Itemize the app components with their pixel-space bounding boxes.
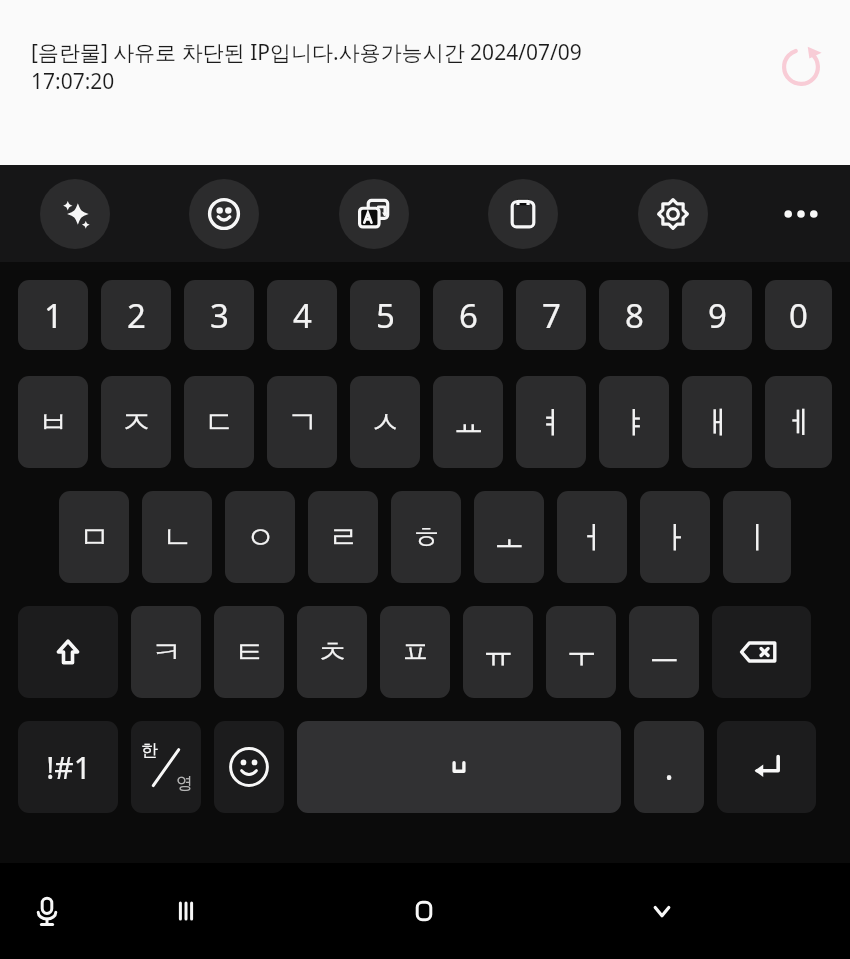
staticText: ㄹ xyxy=(328,518,359,557)
button[interactable]: ㅇ xyxy=(225,491,295,583)
button[interactable]: ㅈ xyxy=(101,376,171,468)
button[interactable]: ㅜ xyxy=(546,606,616,698)
button[interactable]: ㅊ xyxy=(297,606,367,698)
button[interactable]: More options xyxy=(770,183,832,245)
staticText: !#1 xyxy=(46,747,91,788)
staticText: 5 xyxy=(376,293,395,338)
staticText: ㅊ xyxy=(317,633,348,672)
button[interactable]: ㅗ xyxy=(474,491,544,583)
staticText: ㅛ xyxy=(453,403,484,442)
staticText: 3 xyxy=(210,293,229,338)
button[interactable]: 2 xyxy=(101,280,171,350)
button[interactable]: ㄷ xyxy=(184,376,254,468)
button[interactable]: Emoji xyxy=(189,179,259,249)
button[interactable]: 7 xyxy=(516,280,586,350)
staticText: ㅓ xyxy=(577,518,608,557)
button[interactable]: ㅑ xyxy=(599,376,669,468)
button[interactable]: ㅅ xyxy=(350,376,420,468)
staticText: 7 xyxy=(542,293,561,338)
button[interactable]: ㅕ xyxy=(516,376,586,468)
button[interactable]: Emoji xyxy=(214,721,284,813)
staticText: ㅈ xyxy=(121,403,152,442)
button[interactable]: ㅐ xyxy=(682,376,752,468)
button[interactable]: 3 xyxy=(184,280,254,350)
button[interactable]: 4 xyxy=(267,280,337,350)
staticText: 17:07:20 xyxy=(31,67,115,96)
staticText: ㅍ xyxy=(400,633,431,672)
staticText: 4 xyxy=(293,293,312,338)
button[interactable]: ㄹ xyxy=(308,491,378,583)
staticText: [음란물] 사유로 차단된 IP입니다.사용가능시간 2024/07/09 xyxy=(31,38,582,67)
staticText: 9 xyxy=(708,293,727,338)
staticText: ㅌ xyxy=(234,633,265,672)
button[interactable]: 8 xyxy=(599,280,669,350)
staticText: ㄷ xyxy=(204,403,235,442)
button[interactable]: ㅡ xyxy=(629,606,699,698)
button[interactable]: ㅛ xyxy=(433,376,503,468)
button[interactable]: Translate xyxy=(339,179,409,249)
staticText: ㅅ xyxy=(370,403,401,442)
staticText: ㅔ xyxy=(783,403,814,442)
button[interactable]: Space xyxy=(297,721,621,813)
staticText: ㅣ xyxy=(742,518,773,557)
button[interactable]: Backspace xyxy=(712,606,811,698)
button[interactable]: ㅣ xyxy=(723,491,791,583)
staticText: ㅗ xyxy=(494,518,525,557)
staticText: 0 xyxy=(789,293,808,338)
button[interactable]: Enter xyxy=(717,721,816,813)
staticText: 영 xyxy=(176,773,193,794)
button[interactable]: 0 xyxy=(765,280,832,350)
staticText: ㅂ xyxy=(38,403,69,442)
staticText: ㄱ xyxy=(287,403,318,442)
button[interactable]: ㅓ xyxy=(557,491,627,583)
staticText: ㅇ xyxy=(245,518,276,557)
button[interactable]: Home xyxy=(388,875,460,947)
button[interactable]: ㅌ xyxy=(214,606,284,698)
button[interactable]: Voice input xyxy=(11,875,83,947)
button[interactable]: Hide keyboard xyxy=(626,875,698,947)
button[interactable]: 5 xyxy=(350,280,420,350)
staticText: ㅡ xyxy=(649,633,680,672)
staticText: ㅕ xyxy=(536,403,567,442)
button[interactable]: . xyxy=(634,721,704,813)
staticText: ㅜ xyxy=(566,633,597,672)
button[interactable]: Korean English toggle xyxy=(131,721,201,813)
button[interactable]: ㅋ xyxy=(131,606,201,698)
button[interactable]: Refresh xyxy=(772,38,830,96)
staticText: ㄴ xyxy=(162,518,193,557)
button[interactable]: Recents xyxy=(150,875,222,947)
button[interactable]: ㅠ xyxy=(463,606,533,698)
staticText: ㅋ xyxy=(151,633,182,672)
staticText: 한 xyxy=(141,740,158,761)
button[interactable]: 1 xyxy=(18,280,88,350)
button[interactable]: ㅁ xyxy=(59,491,129,583)
button[interactable]: AI suggestions xyxy=(40,179,110,249)
staticText: . xyxy=(664,744,674,790)
button[interactable]: ㅂ xyxy=(18,376,88,468)
button[interactable]: ㅏ xyxy=(640,491,710,583)
staticText: ㅁ xyxy=(79,518,110,557)
button[interactable]: Shift xyxy=(18,606,118,698)
staticText: ㅎ xyxy=(411,518,442,557)
button[interactable]: 9 xyxy=(682,280,752,350)
staticText: 6 xyxy=(459,293,478,338)
staticText: 8 xyxy=(625,293,644,338)
button[interactable]: !#1 xyxy=(18,721,118,813)
staticText: ㅑ xyxy=(619,403,650,442)
button[interactable]: ㄴ xyxy=(142,491,212,583)
button[interactable]: 6 xyxy=(433,280,503,350)
staticText: ㅏ xyxy=(660,518,691,557)
button[interactable]: ㄱ xyxy=(267,376,337,468)
staticText: ㅠ xyxy=(483,633,514,672)
button[interactable]: ㅔ xyxy=(765,376,832,468)
button[interactable]: ㅍ xyxy=(380,606,450,698)
staticText: ㅐ xyxy=(702,403,733,442)
staticText: 2 xyxy=(127,293,146,338)
button[interactable]: Clipboard xyxy=(488,179,558,249)
button[interactable]: ㅎ xyxy=(391,491,461,583)
staticText: 1 xyxy=(44,293,63,338)
button[interactable]: Settings xyxy=(638,179,708,249)
